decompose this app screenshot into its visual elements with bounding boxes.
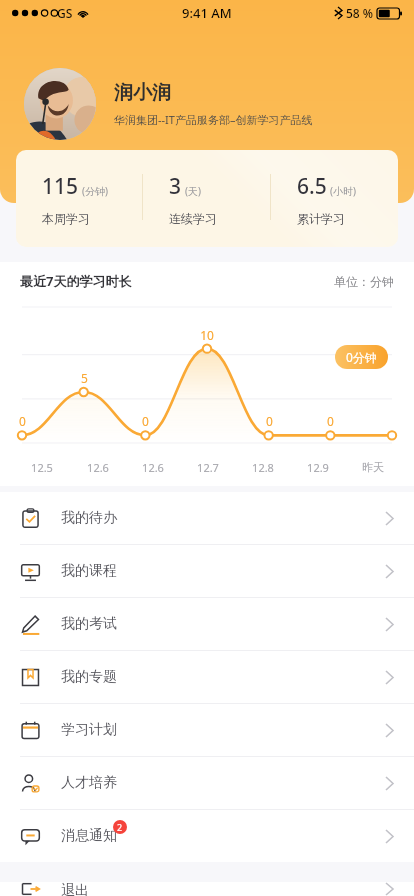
staticText: 2 bbox=[117, 821, 123, 833]
staticText: 115 bbox=[42, 172, 79, 201]
staticText: 0 bbox=[327, 413, 334, 429]
button[interactable]: 我的课程 bbox=[0, 544, 414, 597]
staticText: 0分钟 bbox=[346, 349, 377, 365]
staticText: 12.6 bbox=[87, 460, 109, 475]
button[interactable]: 学习计划 bbox=[0, 703, 414, 756]
staticText: 本周学习 bbox=[42, 211, 90, 226]
staticText: 12.8 bbox=[252, 460, 274, 475]
staticText: 0 bbox=[142, 413, 149, 429]
button[interactable]: 人才培养 bbox=[0, 756, 414, 809]
staticText: 5 bbox=[81, 370, 88, 386]
button[interactable]: 我的考试 bbox=[0, 597, 414, 650]
staticText: (分钟) bbox=[82, 184, 108, 198]
button[interactable]: 我的待办 bbox=[0, 492, 414, 544]
staticText: 我的专题 bbox=[61, 668, 117, 686]
staticText: 人才培养 bbox=[61, 774, 117, 792]
staticText: 10 bbox=[200, 327, 214, 343]
staticText: 12.5 bbox=[31, 460, 53, 475]
button[interactable]: 我的专题 bbox=[0, 650, 414, 703]
staticText: 我的课程 bbox=[61, 562, 117, 580]
button[interactable]: 退出 bbox=[0, 882, 414, 896]
staticText: 3 bbox=[169, 172, 182, 201]
staticText: GS bbox=[57, 5, 73, 21]
staticText: 消息通知 bbox=[61, 827, 117, 845]
staticText: 58 % bbox=[346, 5, 374, 21]
staticText: 单位：分钟 bbox=[334, 274, 394, 289]
staticText: 最近7天的学习时长 bbox=[20, 272, 132, 290]
staticText: 连续学习 bbox=[169, 211, 217, 226]
staticText: 我的待办 bbox=[61, 509, 117, 527]
button[interactable]: 消息通知 bbox=[0, 809, 414, 862]
staticText: (小时) bbox=[330, 184, 356, 198]
button[interactable]: 0分钟 bbox=[346, 349, 377, 365]
staticText: 我的考试 bbox=[61, 615, 117, 633]
staticText: 9:41 AM bbox=[182, 4, 232, 22]
staticText: (天) bbox=[185, 184, 201, 198]
staticText: 12.7 bbox=[197, 460, 219, 475]
staticText: 0 bbox=[266, 413, 273, 429]
staticText: 润小润 bbox=[114, 81, 171, 105]
staticText: 昨天 bbox=[362, 460, 384, 474]
staticText: 12.9 bbox=[307, 460, 329, 475]
staticText: 学习计划 bbox=[61, 721, 117, 739]
staticText: 华润集团--IT产品服务部–创新学习产品线 bbox=[114, 112, 313, 127]
button[interactable]: 润小润 bbox=[24, 68, 414, 140]
staticText: 0 bbox=[19, 413, 26, 429]
staticText: 6.5 bbox=[297, 172, 327, 201]
staticText: 12.6 bbox=[142, 460, 164, 475]
staticText: 退出 bbox=[61, 882, 89, 896]
staticText: 累计学习 bbox=[297, 211, 345, 226]
